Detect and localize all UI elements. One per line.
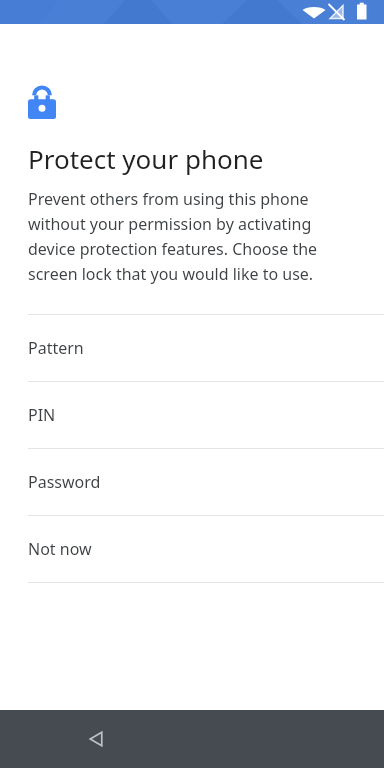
button[interactable]: Back: [72, 715, 120, 763]
button[interactable]: Password: [0, 449, 384, 515]
staticText: Password: [28, 471, 101, 493]
button[interactable]: Not now: [0, 516, 384, 582]
staticText: Prevent others from using this phone wit…: [28, 188, 356, 284]
staticText: PIN: [28, 404, 56, 426]
staticText: Protect your phone: [28, 141, 264, 176]
staticText: Not now: [28, 538, 92, 560]
button[interactable]: Pattern: [0, 315, 384, 381]
staticText: Pattern: [28, 337, 84, 359]
button[interactable]: PIN: [0, 382, 384, 448]
